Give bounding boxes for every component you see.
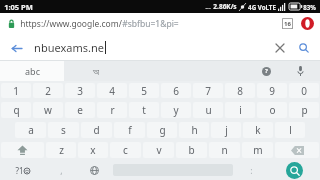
staticText: k xyxy=(255,123,261,137)
staticText: r xyxy=(110,103,115,117)
staticText: l xyxy=(289,123,292,137)
staticText: p xyxy=(301,103,308,117)
staticText: c xyxy=(123,143,128,157)
button[interactable]: d xyxy=(81,122,112,138)
staticText: #sbfbu=1&pi= xyxy=(122,18,179,30)
button[interactable]: 4 xyxy=(97,83,127,98)
button[interactable]: Change language xyxy=(78,160,111,180)
staticText: ? xyxy=(265,67,268,75)
staticText: x xyxy=(90,143,96,157)
button[interactable]: 2 xyxy=(33,83,63,98)
button[interactable]: abc xyxy=(0,61,64,81)
staticText: j xyxy=(225,123,228,137)
button[interactable]: v xyxy=(143,142,174,158)
button[interactable]: m xyxy=(242,142,273,158)
button[interactable]: g xyxy=(147,122,177,138)
button[interactable]: i xyxy=(225,102,255,118)
staticText: i xyxy=(239,103,242,117)
staticText: 3 xyxy=(77,84,83,98)
button[interactable]: 8 xyxy=(225,83,255,98)
staticText: e xyxy=(77,103,83,117)
button[interactable]: a xyxy=(15,122,46,138)
staticText: অ xyxy=(93,67,99,76)
button[interactable]: e xyxy=(65,102,95,118)
button[interactable]: 1 xyxy=(1,83,31,98)
button[interactable]: Shift xyxy=(1,142,44,158)
button[interactable]: k xyxy=(243,122,273,138)
button[interactable]: 9 xyxy=(257,83,287,98)
staticText: ... xyxy=(205,2,211,12)
button[interactable]: 5 xyxy=(129,83,159,98)
button[interactable]: Backspace xyxy=(275,142,319,158)
staticText: 8 xyxy=(237,84,243,98)
button[interactable]: o xyxy=(257,102,287,118)
button[interactable]: u xyxy=(193,102,223,118)
button[interactable]: w xyxy=(33,102,63,118)
staticText: t xyxy=(142,103,146,117)
button[interactable]: n xyxy=(209,142,240,158)
button[interactable]: y xyxy=(161,102,191,118)
button[interactable]: l xyxy=(275,122,305,138)
button[interactable]: Opera menu xyxy=(301,17,314,30)
button[interactable]: 0 xyxy=(289,83,319,98)
button[interactable]: Back xyxy=(8,40,24,56)
button[interactable]: Search xyxy=(268,160,320,180)
staticText: 83% xyxy=(303,3,316,11)
staticText: h xyxy=(191,123,198,137)
staticText: 4 xyxy=(109,84,115,98)
button[interactable]: z xyxy=(46,142,76,158)
staticText: https://www.google.com/ xyxy=(20,18,122,30)
button[interactable]: j xyxy=(211,122,241,138)
staticText: w xyxy=(44,103,52,117)
staticText: 4G VoLTE xyxy=(248,3,276,11)
button[interactable]: Clear xyxy=(272,40,288,56)
button[interactable]: b xyxy=(176,142,207,158)
staticText: v xyxy=(156,143,162,157)
staticText: o xyxy=(269,103,276,117)
button[interactable]: s xyxy=(48,122,79,138)
staticText: n xyxy=(221,143,228,157)
staticText: u xyxy=(205,103,212,117)
button[interactable]: https://www.google.com/ xyxy=(8,13,282,34)
button[interactable]: t xyxy=(129,102,159,118)
button[interactable]: q xyxy=(1,102,31,118)
button[interactable]: h xyxy=(179,122,209,138)
button[interactable]: ?1 xyxy=(0,160,45,180)
staticText: z xyxy=(59,143,64,157)
staticText: s xyxy=(61,123,66,137)
staticText: , xyxy=(60,164,63,176)
staticText: q xyxy=(13,103,20,117)
staticText: nbuexams.ne xyxy=(34,40,104,55)
staticText: m xyxy=(253,143,263,157)
staticText: 7 xyxy=(205,84,211,98)
button[interactable]: 6 xyxy=(161,83,191,98)
button[interactable]: Search xyxy=(296,40,312,56)
staticText: 1 xyxy=(13,84,19,98)
button[interactable]: r xyxy=(97,102,127,118)
staticText: 16 xyxy=(284,20,291,28)
button[interactable]: Help xyxy=(256,61,276,81)
staticText: y xyxy=(173,103,179,117)
button[interactable]: 3 xyxy=(65,83,95,98)
staticText: g xyxy=(159,123,166,137)
staticText: 9 xyxy=(269,84,275,98)
button[interactable]: x xyxy=(78,142,108,158)
button[interactable]: c xyxy=(110,142,141,158)
staticText: f xyxy=(128,123,132,137)
button[interactable]: 7 xyxy=(193,83,223,98)
staticText: 1:05 PM xyxy=(4,2,33,12)
staticText: d xyxy=(93,123,100,137)
staticText: abc xyxy=(25,65,40,77)
staticText: : xyxy=(250,164,253,176)
button[interactable]: f xyxy=(114,122,145,138)
staticText: ?1 xyxy=(15,165,24,176)
button[interactable]: p xyxy=(289,102,319,118)
staticText: 6 xyxy=(173,84,179,98)
button[interactable]: অ xyxy=(64,61,128,81)
staticText: 2 xyxy=(45,84,51,98)
button[interactable]: Tabs xyxy=(282,18,293,29)
button[interactable]: Voice input xyxy=(290,61,310,81)
